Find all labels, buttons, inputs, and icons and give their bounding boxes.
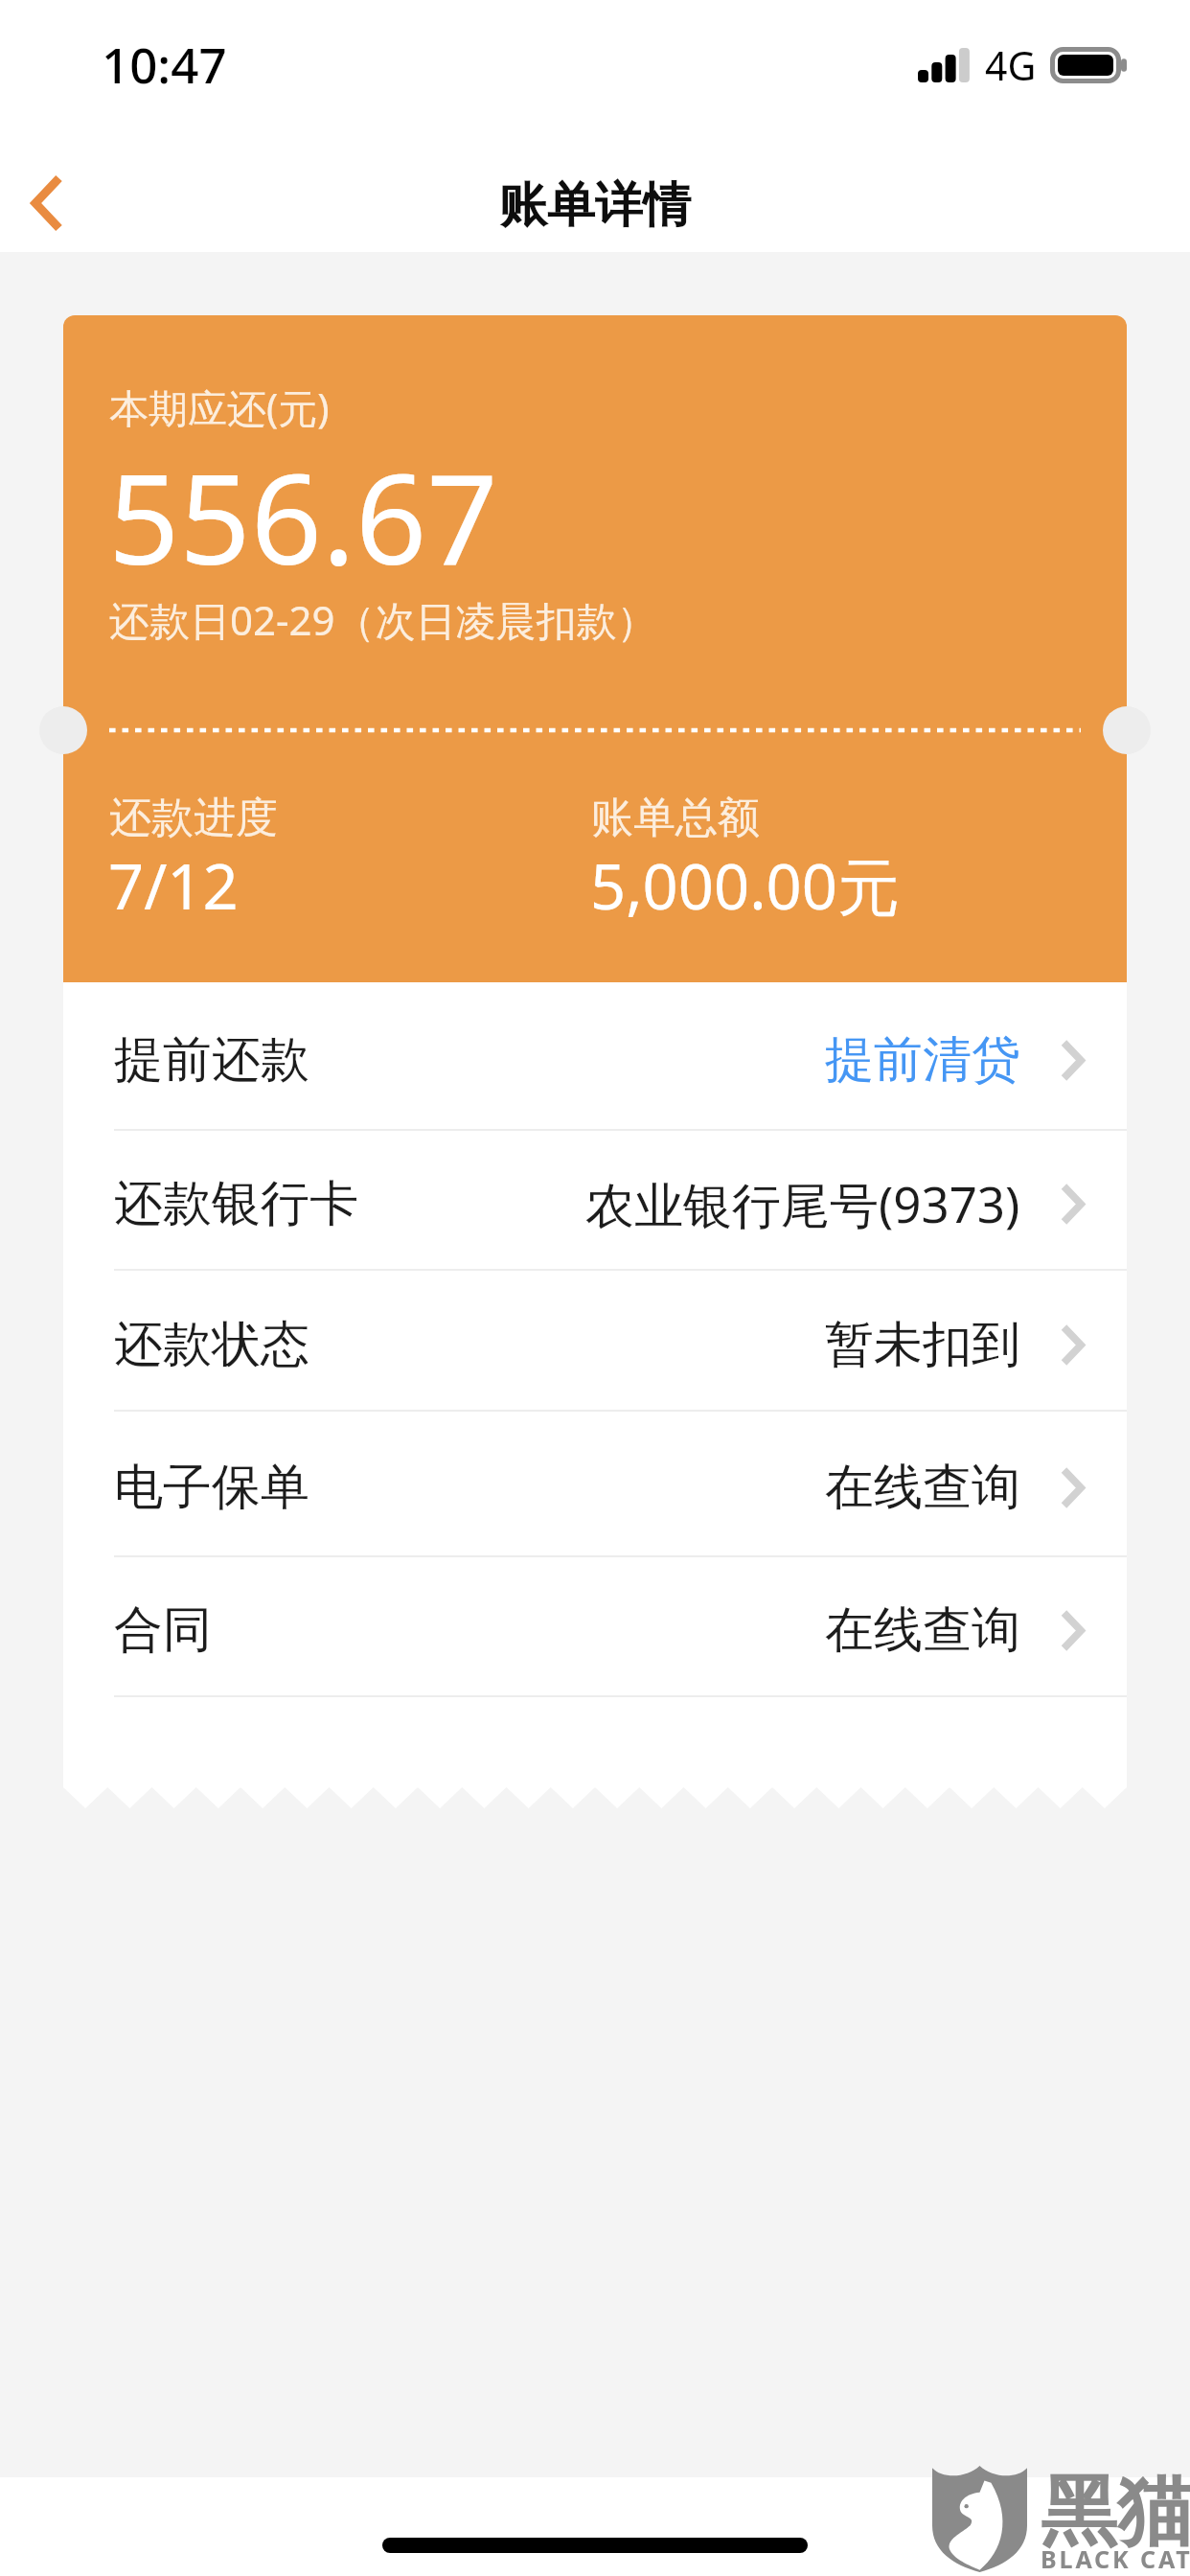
button[interactable]: Back xyxy=(0,131,105,246)
staticText: 电子保单 xyxy=(114,1457,309,1518)
staticText: 合同 xyxy=(114,1599,212,1661)
staticText: 在线查询 xyxy=(825,1457,1020,1518)
staticText: 7/12 xyxy=(108,843,239,929)
button[interactable]: 还款状态 xyxy=(63,1271,1127,1412)
button[interactable]: 合同 xyxy=(63,1557,1127,1697)
button[interactable]: 提前还款 xyxy=(63,982,1127,1131)
staticText: BLACK CAT xyxy=(1041,2542,1190,2575)
staticText: 还款状态 xyxy=(114,1314,309,1375)
staticText: 10:47 xyxy=(102,31,227,97)
staticText: 还款银行卡 xyxy=(114,1173,358,1234)
staticText: 还款日02-29（次日凌晨扣款） xyxy=(109,592,657,647)
staticText: 暂未扣到 xyxy=(825,1314,1020,1375)
staticText: 556.67 xyxy=(108,431,498,601)
staticText: 还款进度 xyxy=(109,792,278,844)
staticText: 农业银行尾号(9373) xyxy=(585,1170,1020,1237)
staticText: 提前清贷 xyxy=(825,1029,1020,1091)
staticText: 5,000.00元 xyxy=(590,843,900,929)
staticText: 本期应还(元) xyxy=(109,380,330,434)
staticText: 在线查询 xyxy=(825,1599,1020,1661)
staticText: 黑猫 xyxy=(1041,2464,1190,2561)
button[interactable]: 电子保单 xyxy=(63,1412,1127,1557)
staticText: 账单总额 xyxy=(591,792,760,844)
staticText: 账单详情 xyxy=(499,175,691,236)
button[interactable]: 还款银行卡 xyxy=(63,1131,1127,1271)
staticText: 提前还款 xyxy=(114,1029,309,1091)
staticText: 4G xyxy=(985,38,1037,92)
